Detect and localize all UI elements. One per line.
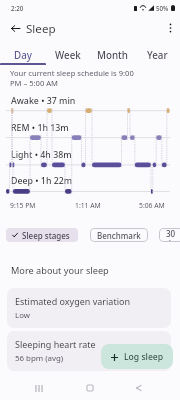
staticText: Year [147, 49, 168, 62]
staticText: Benchmark [97, 230, 141, 241]
button[interactable]: Week [45, 44, 90, 66]
button[interactable]: Sleep stages [6, 228, 78, 242]
button[interactable]: Month [90, 44, 135, 66]
button[interactable]: 30 d [159, 228, 180, 242]
staticText: Deep • 1h 22m [11, 175, 73, 187]
staticText: 5:06 AM [139, 201, 165, 210]
button[interactable]: Home [75, 377, 105, 399]
button[interactable]: More options [159, 17, 180, 39]
staticText: 30 d [166, 228, 180, 242]
button[interactable]: Back [123, 377, 153, 399]
staticText: Your current sleep schedule is 9:00 PM –… [10, 68, 134, 88]
button[interactable]: Sleeping heart rate [7, 331, 171, 371]
staticText: Week [55, 49, 81, 62]
button[interactable]: Day [0, 44, 45, 66]
button[interactable]: Log sleep [101, 344, 173, 369]
staticText: Sleep [26, 21, 56, 37]
button[interactable]: Year [135, 44, 180, 66]
staticText: Estimated oxygen variation [15, 295, 130, 307]
staticText: Log sleep [124, 351, 164, 363]
staticText: Light • 4h 38m [11, 149, 72, 161]
staticText: 50% [156, 4, 169, 12]
staticText: Sleep stages [22, 230, 70, 241]
staticText: 2:20 [11, 4, 24, 12]
staticText: More about your sleep [11, 264, 109, 277]
button[interactable]: Benchmark [90, 228, 148, 242]
staticText: 9:15 PM [10, 201, 36, 210]
staticText: 1:11 AM [75, 201, 101, 210]
staticText: Month [97, 49, 129, 62]
staticText: Awake • 37 min [11, 95, 76, 107]
button[interactable]: Back [4, 17, 26, 39]
button[interactable]: Recents [24, 377, 54, 399]
staticText: REM • 1h 13m [11, 122, 69, 134]
staticText: Sleeping heart rate [15, 338, 96, 350]
staticText: 56 bpm (avg) [15, 353, 64, 364]
staticText: Day [14, 49, 32, 62]
button[interactable]: Estimated oxygen variation [7, 288, 171, 328]
staticText: Low [15, 310, 30, 321]
